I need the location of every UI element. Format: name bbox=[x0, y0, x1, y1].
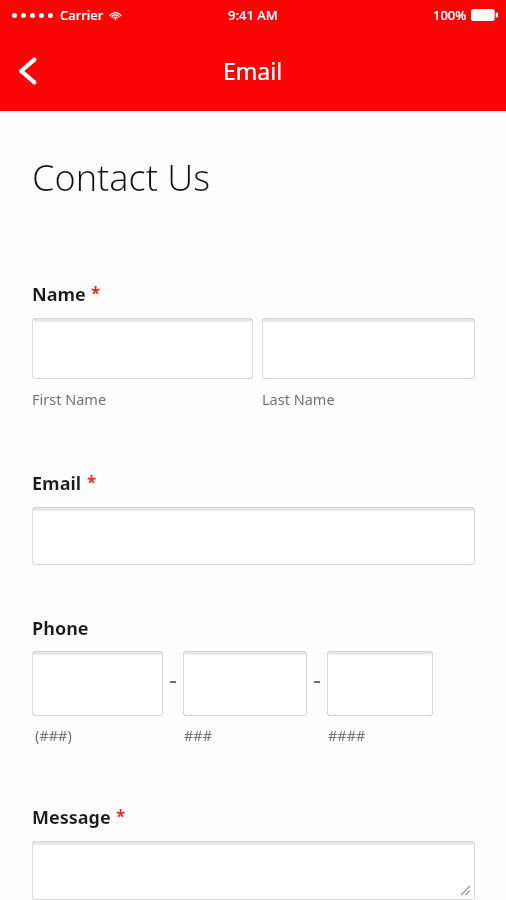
staticText: Email bbox=[223, 55, 283, 86]
staticText: (###) bbox=[35, 725, 72, 745]
button[interactable] bbox=[32, 507, 475, 565]
button[interactable] bbox=[327, 651, 433, 716]
staticText: 9:41 AM bbox=[228, 6, 278, 24]
staticText: Last Name bbox=[262, 389, 335, 409]
button[interactable] bbox=[262, 318, 475, 379]
staticText: First Name bbox=[32, 389, 107, 409]
staticText: Phone bbox=[32, 616, 89, 641]
button[interactable] bbox=[183, 651, 307, 716]
staticText: * bbox=[87, 471, 97, 494]
staticText: Carrier bbox=[60, 6, 104, 24]
staticText: * bbox=[91, 282, 101, 305]
staticText: Contact Us bbox=[32, 153, 211, 202]
staticText: 100% bbox=[433, 6, 467, 24]
button[interactable] bbox=[32, 651, 163, 716]
staticText: * bbox=[116, 805, 126, 828]
staticText: ### bbox=[184, 725, 213, 745]
staticText: #### bbox=[328, 725, 366, 745]
staticText: Email bbox=[32, 471, 82, 496]
staticText: Name bbox=[32, 282, 86, 307]
button[interactable] bbox=[32, 841, 475, 900]
button[interactable] bbox=[32, 318, 253, 379]
staticText: Message bbox=[32, 805, 111, 830]
button[interactable]: Back bbox=[0, 43, 56, 99]
